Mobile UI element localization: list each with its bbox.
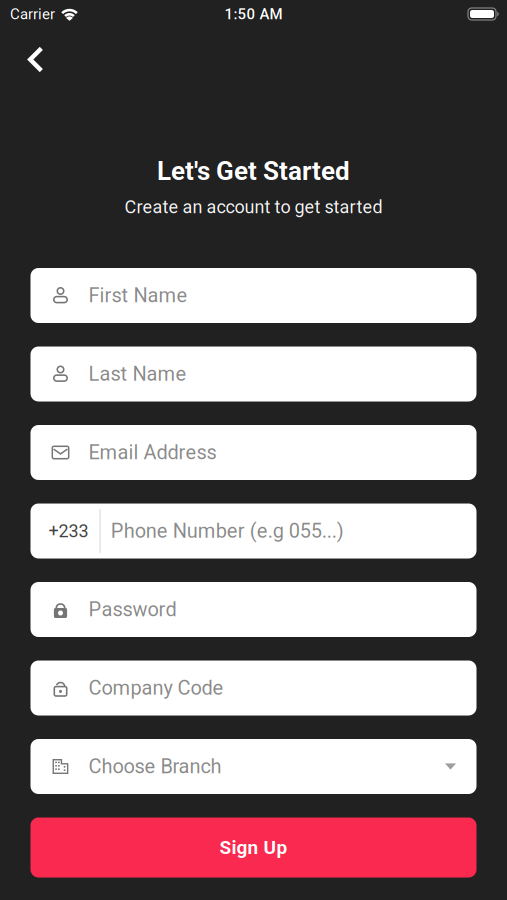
staticText: Choose Branch [88, 755, 221, 778]
staticText: Phone Number (e.g 055...) [111, 520, 344, 542]
staticText: Create an account to get started [124, 197, 382, 217]
staticText: Carrier [10, 5, 55, 22]
button[interactable]: Back [27, 47, 44, 72]
staticText: Password [88, 598, 176, 621]
staticText: Last Name [88, 363, 186, 385]
staticText: Sign Up [219, 837, 287, 858]
button[interactable]: Company Code [30, 660, 476, 715]
staticText: Company Code [88, 677, 223, 699]
button[interactable]: First Name [30, 268, 476, 323]
button[interactable]: Choose Branch [30, 739, 476, 794]
button[interactable]: Sign Up [30, 817, 476, 877]
button[interactable]: Last Name [30, 346, 476, 401]
staticText: Let's Get Started [157, 156, 350, 186]
button[interactable]: +233 [30, 503, 476, 558]
button[interactable]: Email Address [30, 425, 476, 480]
button[interactable]: Password [30, 582, 476, 637]
staticText: +233 [48, 521, 88, 541]
staticText: 1:50 AM [224, 5, 282, 22]
staticText: Email Address [88, 441, 216, 464]
staticText: First Name [88, 284, 187, 307]
